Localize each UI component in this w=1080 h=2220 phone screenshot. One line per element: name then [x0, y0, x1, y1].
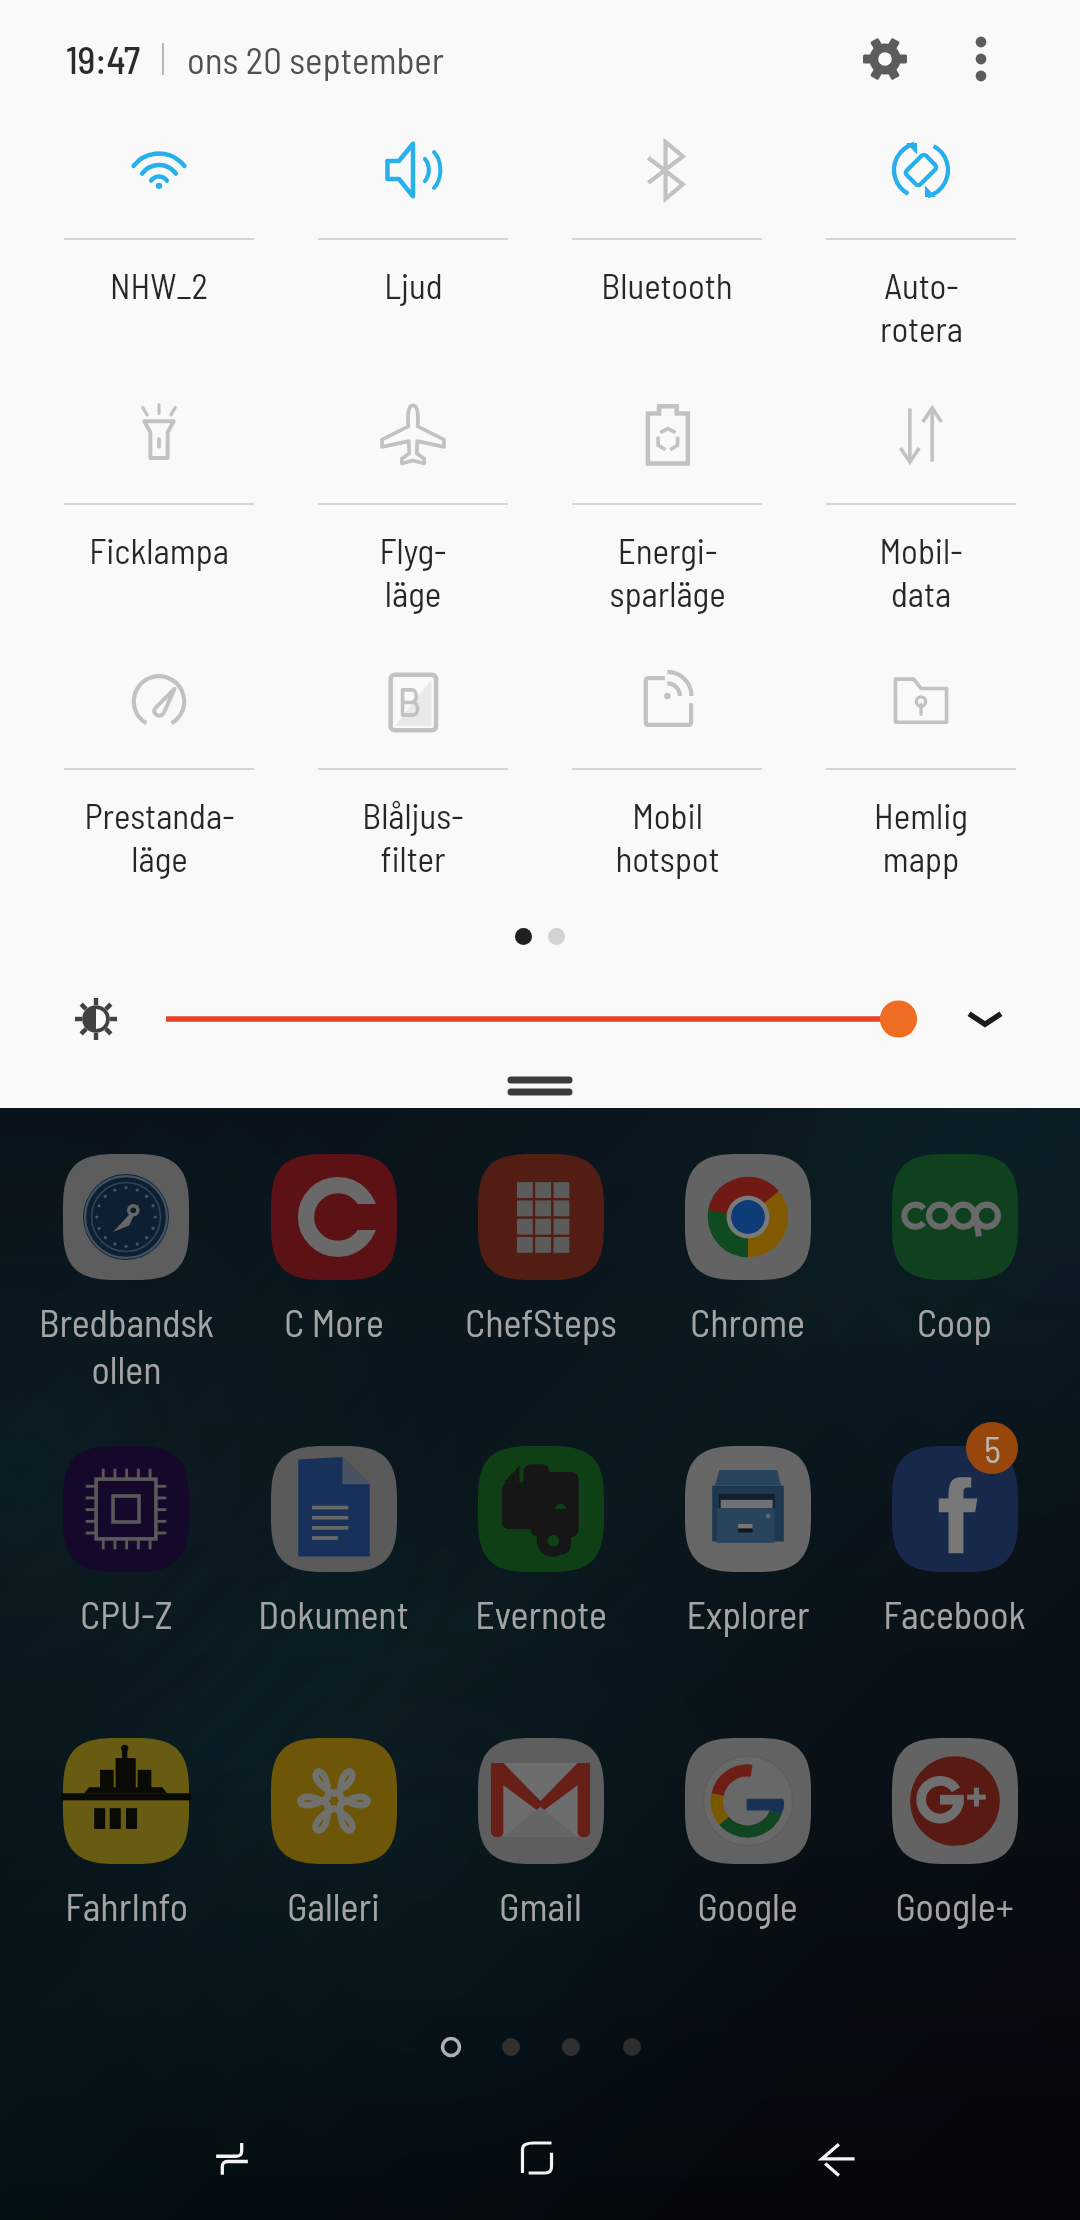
button[interactable]: Ljud [286, 101, 540, 366]
button[interactable]: Energi- sparläge [540, 366, 794, 631]
staticText: ons 20 september [187, 37, 444, 81]
button[interactable]: Google [644, 1736, 851, 1929]
staticText: Dokument [258, 1591, 409, 1637]
button[interactable]: Chrome [644, 1152, 851, 1345]
button[interactable]: FahrInfo [22, 1736, 230, 1929]
button[interactable]: Auto- rotera [794, 101, 1048, 366]
button[interactable]: Recents [172, 2098, 292, 2218]
button[interactable]: Blåljus- filter [286, 631, 540, 896]
staticText: C More [284, 1299, 384, 1345]
staticText: Energi- sparläge [609, 529, 726, 614]
button[interactable]: Expand [949, 983, 1021, 1055]
button[interactable]: Coop [851, 1152, 1058, 1345]
button[interactable]: ChefSteps [437, 1152, 644, 1345]
button[interactable]: Evernote [437, 1444, 644, 1637]
button[interactable]: Flyg- läge [286, 366, 540, 631]
staticText: Google [697, 1883, 798, 1929]
button[interactable]: CPU-Z [22, 1444, 230, 1637]
staticText: Evernote [475, 1591, 607, 1637]
staticText: Chrome [690, 1299, 805, 1345]
staticText: Bredbandsk ollen [39, 1299, 214, 1392]
button[interactable]: C More [230, 1152, 437, 1345]
staticText: Hemlig mapp [874, 794, 968, 879]
button[interactable]: Gmail [437, 1736, 644, 1929]
button[interactable]: Mobil- data [794, 366, 1048, 631]
button[interactable] [150, 999, 940, 1039]
staticText: CPU-Z [80, 1591, 173, 1637]
button[interactable]: Bredbandsk ollen [22, 1152, 230, 1392]
button[interactable]: Dokument [230, 1444, 437, 1637]
button[interactable]: Prestanda- läge [32, 631, 286, 896]
staticText: Bluetooth [601, 264, 733, 306]
staticText: Mobil- data [879, 529, 963, 614]
staticText: FahrInfo [65, 1883, 188, 1929]
staticText: 5 [984, 1427, 1001, 1470]
staticText: Prestanda- läge [84, 794, 235, 879]
staticText: Explorer [686, 1591, 810, 1637]
staticText: ChefSteps [465, 1299, 617, 1345]
button[interactable]: Hemlig mapp [794, 631, 1048, 896]
staticText: Flyg- läge [379, 529, 447, 614]
staticText: Gmail [499, 1883, 582, 1929]
staticText: Coop [917, 1299, 992, 1345]
button[interactable]: Bluetooth [540, 101, 794, 366]
staticText: Facebook [883, 1591, 1026, 1637]
button[interactable]: Google+ [851, 1736, 1058, 1929]
button[interactable]: Mobil hotspot [540, 631, 794, 896]
button[interactable]: Galleri [230, 1736, 437, 1929]
button[interactable]: Home [477, 2098, 597, 2218]
staticText: 19:47 [66, 36, 141, 82]
staticText: Mobil hotspot [615, 794, 720, 879]
staticText: Google+ [895, 1883, 1014, 1929]
button[interactable]: Back [778, 2098, 898, 2218]
button[interactable]: More options [933, 11, 1029, 107]
button[interactable]: Brightness [60, 983, 132, 1055]
staticText: Ljud [384, 264, 443, 306]
staticText: NHW_2 [110, 264, 208, 306]
staticText: Auto- rotera [880, 264, 963, 349]
staticText: Blåljus- filter [362, 794, 464, 879]
button[interactable]: 5 [851, 1444, 1058, 1637]
button[interactable]: Settings [837, 11, 933, 107]
button[interactable]: Explorer [644, 1444, 851, 1637]
button[interactable]: Ficklampa [32, 366, 286, 631]
button[interactable]: NHW_2 [32, 101, 286, 366]
staticText: Galleri [287, 1883, 380, 1929]
staticText: Ficklampa [89, 529, 229, 571]
